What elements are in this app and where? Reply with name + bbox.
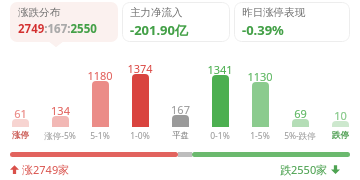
staticText: 主力净流入 [130, 6, 183, 19]
staticText: 134 [51, 103, 70, 118]
staticText: -0.39% [242, 21, 284, 39]
staticText: 1-0% [130, 130, 150, 142]
staticText: 167 [171, 102, 190, 117]
button[interactable]: 平盘 [156, 130, 204, 141]
staticText: 69 [294, 106, 307, 121]
staticText: 平盘 [172, 130, 189, 141]
button[interactable]: 0-1% [196, 130, 244, 142]
button[interactable]: 5%-跌停 [276, 130, 324, 142]
staticText: 10 [334, 108, 347, 123]
button[interactable]: 涨跌分布 [10, 2, 118, 42]
button[interactable]: 跌停 [316, 130, 360, 141]
staticText: 1-5% [250, 130, 270, 142]
staticText: 0-1% [210, 130, 230, 142]
staticText: 1341 [207, 62, 233, 77]
button[interactable]: 跌2550家 [280, 162, 340, 177]
staticText: -201.90亿 [130, 21, 188, 39]
button[interactable]: Up [10, 162, 70, 177]
staticText: 61 [14, 106, 27, 121]
staticText: 涨跌分布 [18, 6, 60, 19]
button[interactable]: 涨停 [0, 130, 44, 141]
staticText: 跌停 [332, 130, 349, 141]
other: Down [331, 164, 340, 175]
staticText: 昨日涨停表现 [242, 6, 305, 19]
staticText: 2749:167:2550 [18, 21, 97, 37]
button[interactable]: 1-5% [236, 130, 284, 142]
staticText: 跌2550家 [280, 162, 328, 177]
button[interactable]: 昨日涨停表现 [234, 2, 350, 42]
button[interactable]: 1-0% [116, 130, 164, 142]
button[interactable]: 主力净流入 [122, 2, 230, 42]
staticText: 涨停 [12, 130, 29, 141]
staticText: 涨2749家 [22, 162, 70, 177]
staticText: 1374 [127, 61, 153, 76]
button[interactable]: 5-1% [76, 130, 124, 142]
staticText: 5-1% [90, 130, 110, 142]
other: Up [10, 164, 19, 175]
button[interactable]: 涨停-5% [36, 130, 84, 142]
staticText: 1130 [247, 69, 273, 84]
staticText: 1180 [87, 68, 113, 83]
staticText: 5%-跌停 [284, 130, 316, 142]
staticText: 涨停-5% [44, 130, 76, 142]
